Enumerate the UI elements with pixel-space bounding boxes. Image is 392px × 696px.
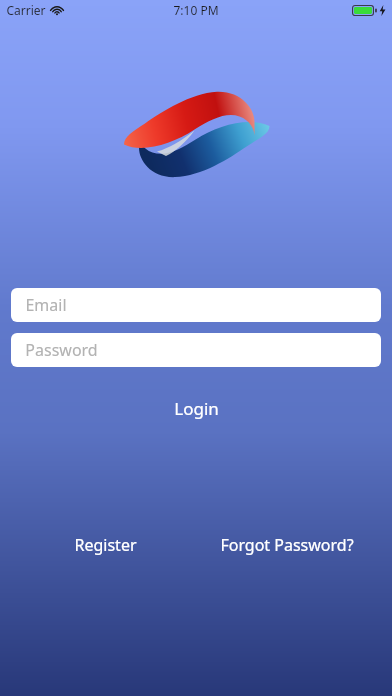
staticText: 7:10 PM <box>173 2 219 18</box>
button[interactable]: Password <box>11 333 381 367</box>
staticText: Login <box>174 397 219 420</box>
button[interactable]: Forgot Password? <box>196 534 378 556</box>
staticText: Carrier <box>6 2 46 18</box>
button[interactable]: Register <box>14 534 196 556</box>
staticText: Register <box>74 534 137 556</box>
button[interactable]: Email <box>11 288 381 322</box>
staticText: Email <box>25 294 67 316</box>
button[interactable]: Login <box>0 397 392 420</box>
staticText: Forgot Password? <box>220 534 354 556</box>
staticText: Password <box>25 339 98 361</box>
